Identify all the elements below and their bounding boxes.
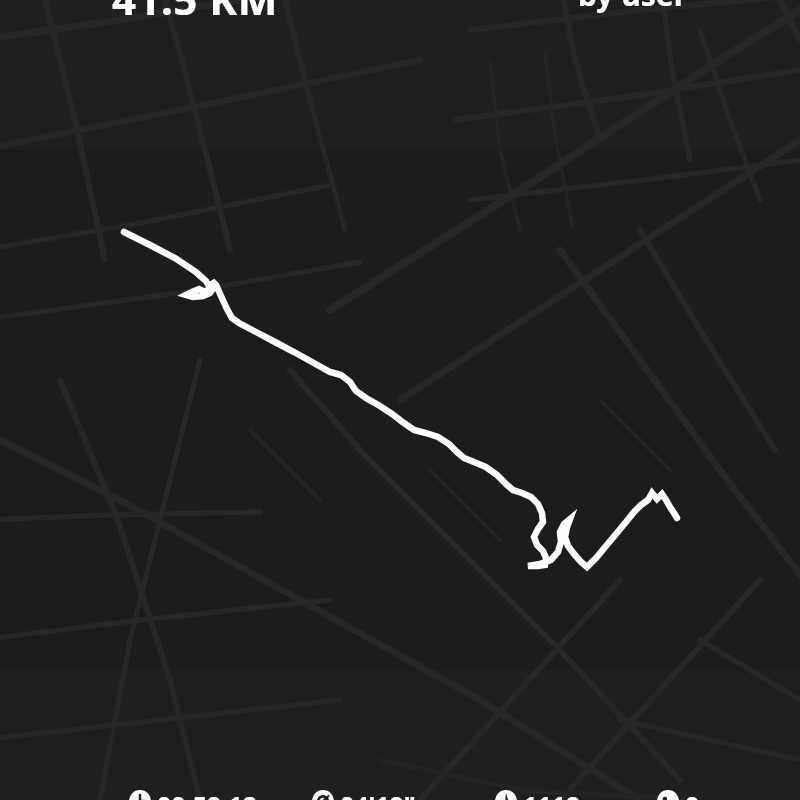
staticText: 00:59:18 (157, 788, 257, 800)
button[interactable]: 41.5 KM (112, 0, 278, 27)
button[interactable]: Duration (129, 786, 289, 800)
staticText: by user (578, 0, 688, 15)
button[interactable]: Steps (657, 786, 800, 800)
button[interactable]: by user (578, 0, 688, 15)
button[interactable]: Average pace (312, 786, 472, 800)
staticText: 0 (685, 788, 700, 800)
button[interactable]: Calories (495, 786, 655, 800)
staticText: 04'19" (340, 788, 416, 800)
staticText: 41.5 KM (112, 0, 278, 27)
staticText: 1119 (523, 788, 581, 800)
